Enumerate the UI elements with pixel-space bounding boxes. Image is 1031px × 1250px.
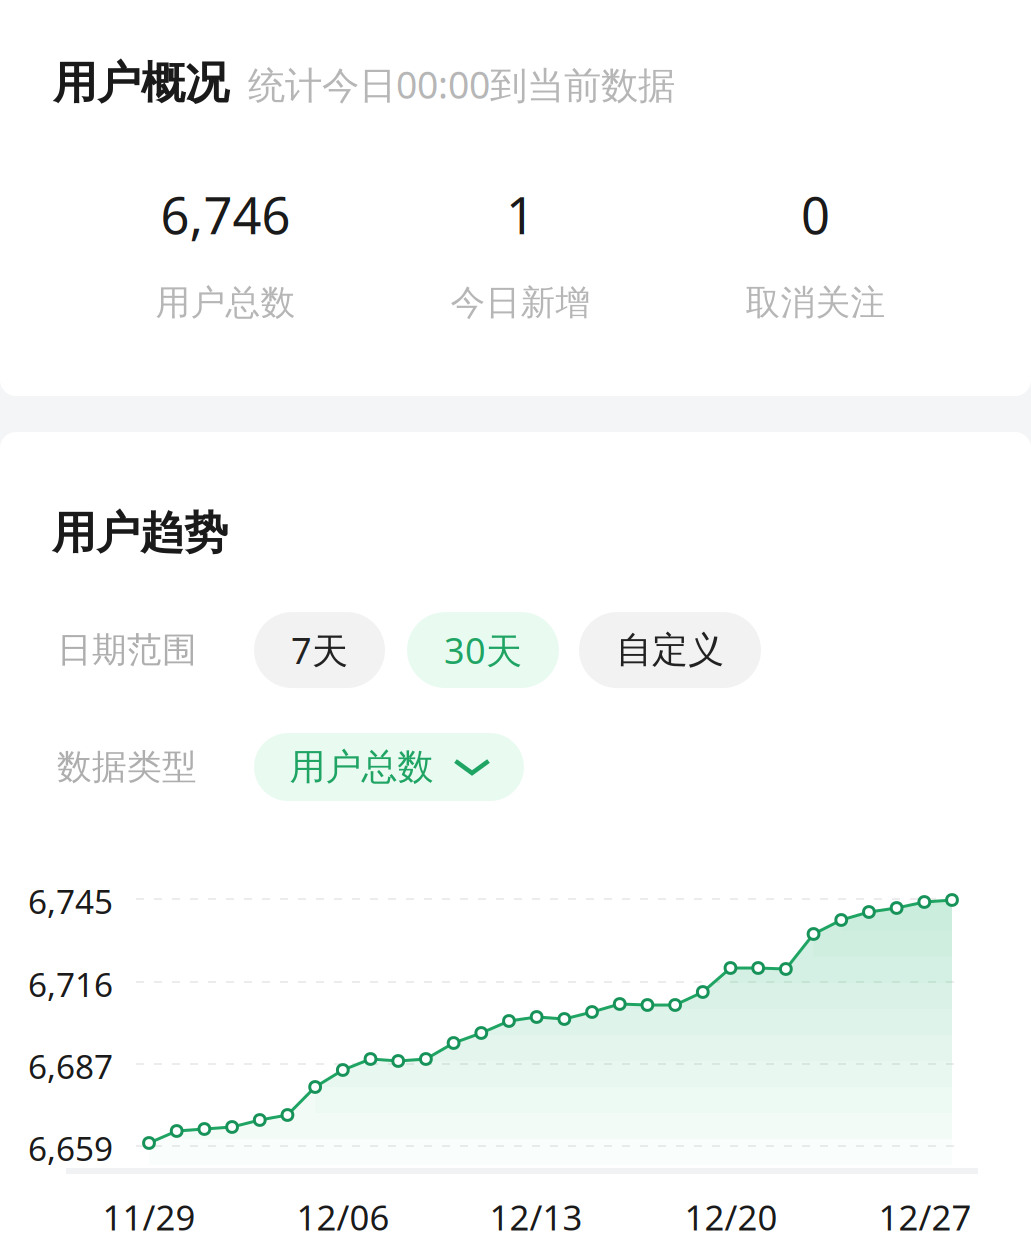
staticText: 12/20 <box>684 1194 777 1240</box>
button[interactable]: 用户总数 <box>254 733 524 801</box>
staticText: 6,745 <box>28 879 113 923</box>
staticText: 0 <box>801 181 830 248</box>
staticText: 30天 <box>444 626 522 674</box>
staticText: 自定义 <box>616 628 724 672</box>
staticText: 用户总数 <box>155 281 295 324</box>
staticText: 7天 <box>291 626 348 674</box>
button[interactable]: 自定义 <box>579 612 761 688</box>
staticText: 12/13 <box>489 1194 582 1240</box>
button[interactable]: 30天 <box>407 612 559 688</box>
staticText: 用户趋势 <box>52 506 228 560</box>
staticText: 数据类型 <box>57 746 197 788</box>
staticText: 用户概况 <box>53 56 229 110</box>
staticText: 11/29 <box>102 1194 195 1240</box>
staticText: 6,746 <box>160 181 290 248</box>
button[interactable]: 7天 <box>254 612 385 688</box>
staticText: 1 <box>506 181 535 248</box>
staticText: 统计今日00:00到当前数据 <box>248 59 675 109</box>
staticText: 6,659 <box>28 1126 113 1170</box>
staticText: 12/06 <box>296 1194 389 1240</box>
staticText: 取消关注 <box>745 281 885 324</box>
staticText: 12/27 <box>878 1194 971 1240</box>
staticText: 日期范围 <box>57 629 197 671</box>
staticText: 用户总数 <box>289 745 433 789</box>
staticText: 今日新增 <box>450 281 590 324</box>
staticText: 6,687 <box>28 1044 113 1088</box>
staticText: 6,716 <box>28 962 113 1006</box>
